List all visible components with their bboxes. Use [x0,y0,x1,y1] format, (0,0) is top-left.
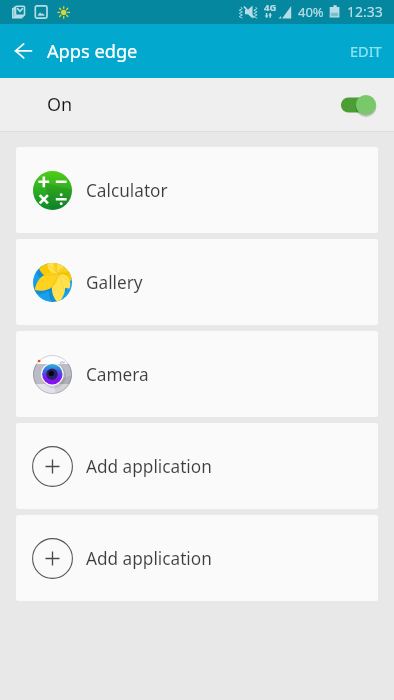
button[interactable]: Add application [16,515,378,601]
staticText: 40% [298,3,324,21]
button[interactable]: Add application [16,423,378,509]
button[interactable]: Calculator [16,147,378,233]
staticText: EDIT [350,41,382,61]
staticText: On [47,92,73,117]
staticText: 12:33 [347,2,383,21]
button[interactable]: Camera [16,331,378,417]
staticText: 4G [264,1,277,14]
staticText: Camera [86,363,149,386]
button[interactable]: On [0,78,394,131]
button[interactable]: EDIT [338,29,394,73]
staticText: Calculator [86,179,168,202]
staticText: Apps edge [47,39,138,64]
staticText: Add application [86,547,212,570]
button[interactable]: Navigate up [5,32,43,70]
staticText: Add application [86,455,212,478]
staticText: Gallery [86,271,143,294]
button[interactable]: Gallery [16,239,378,325]
